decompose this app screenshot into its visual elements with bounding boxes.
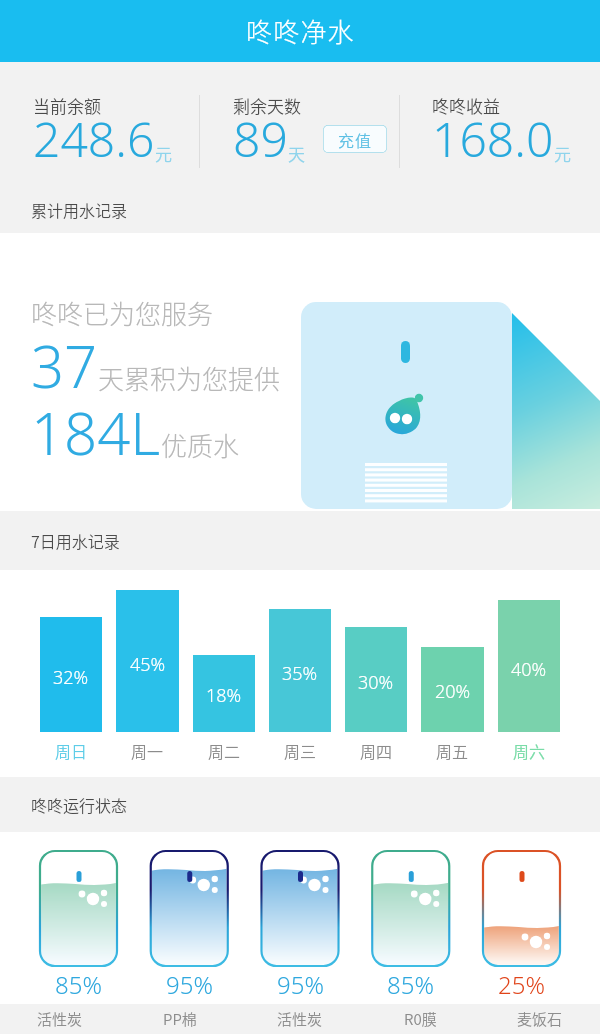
staticText: 充值 [338,128,373,151]
staticText: 周一 [131,739,164,762]
staticText: 45% [130,652,166,677]
button[interactable]: 充值 [323,125,387,153]
button[interactable]: 麦饭石 [483,968,560,1001]
staticText: 周三 [284,739,317,762]
staticText: 25% [498,968,545,1001]
staticText: 168.0 [432,106,554,171]
staticText: 当前余额 [33,93,101,118]
staticText: PP棉 [163,1008,197,1030]
staticText: 248.6 [33,106,155,171]
staticText: 元 [554,141,571,166]
staticText: 40% [511,657,547,682]
staticText: 184L [31,393,161,472]
staticText: 30% [358,670,394,695]
staticText: 32% [53,665,89,690]
button[interactable]: 活性炭 [40,968,117,1001]
button[interactable]: PP棉 [120,1004,240,1034]
staticText: 咚咚净水 [246,12,355,50]
staticText: 咚咚已为您服务 [31,294,214,332]
staticText: R0膜 [404,1008,437,1030]
button[interactable]: R0膜 [372,968,449,1001]
staticText: 天累积为您提供 [98,359,281,397]
staticText: 20% [435,679,471,704]
staticText: 周日 [55,739,88,762]
button[interactable]: PP棉 [151,968,228,1001]
staticText: 周六 [513,739,546,762]
staticText: 7日用水记录 [31,529,120,552]
button[interactable]: R0膜 [360,1004,480,1034]
staticText: 元 [155,141,172,166]
staticText: 85% [55,968,102,1001]
staticText: 活性炭 [277,1008,323,1030]
staticText: 麦饭石 [517,1008,563,1030]
staticText: 18% [206,683,242,708]
staticText: 35% [282,661,318,686]
button[interactable]: 麦饭石 [480,1004,600,1034]
button[interactable]: 活性炭 [0,1004,120,1034]
staticText: 95% [166,968,213,1001]
staticText: 累计用水记录 [31,198,128,221]
staticText: 89 [233,106,288,171]
staticText: 周二 [208,739,241,762]
button[interactable]: 咚咚净水 [0,0,600,62]
staticText: 周四 [360,739,393,762]
staticText: 周五 [436,739,469,762]
staticText: 37 [31,326,98,405]
staticText: 85% [387,968,434,1001]
staticText: 优质水 [161,426,240,464]
staticText: 95% [277,968,324,1001]
staticText: 咚咚运行状态 [31,793,128,816]
staticText: 天 [288,141,305,166]
staticText: 咚咚收益 [432,93,500,118]
staticText: 剩余天数 [233,93,301,118]
button[interactable]: 活性炭 [262,968,339,1001]
button[interactable]: 活性炭 [240,1004,360,1034]
staticText: 活性炭 [37,1008,83,1030]
